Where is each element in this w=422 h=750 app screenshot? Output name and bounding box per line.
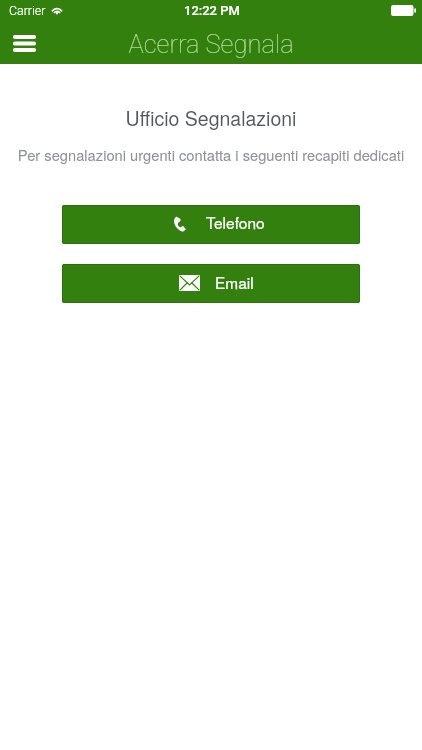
button[interactable]: Email xyxy=(62,264,360,303)
staticText: Carrier xyxy=(9,3,46,18)
button[interactable]: Open navigation menu xyxy=(4,23,45,64)
staticText: Telefono xyxy=(206,211,265,233)
staticText: Acerra Segnala xyxy=(0,29,422,59)
staticText: Per segnalazioni urgenti contatta i segu… xyxy=(0,144,422,165)
button[interactable]: Telefono xyxy=(62,205,360,244)
staticText: Email xyxy=(215,271,254,293)
staticText: Ufficio Segnalazioni xyxy=(0,104,422,132)
staticText: 12:22 PM xyxy=(184,3,240,18)
